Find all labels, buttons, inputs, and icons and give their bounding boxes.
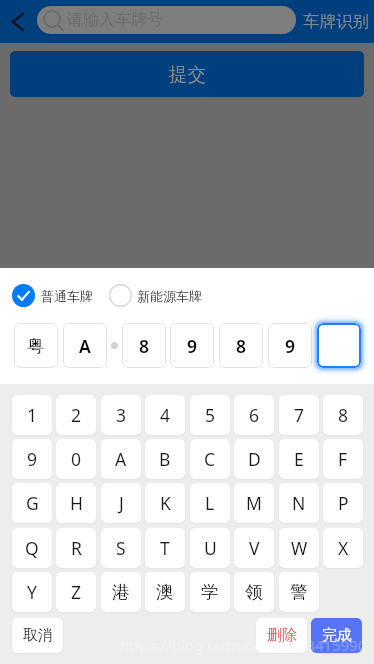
button[interactable]: 车牌识别 xyxy=(303,11,369,32)
button[interactable]: 8 xyxy=(323,395,363,435)
button[interactable]: 9 xyxy=(170,323,214,368)
button[interactable]: Y xyxy=(12,572,52,612)
button[interactable]: X xyxy=(323,528,363,568)
staticText: 提交 xyxy=(169,63,206,86)
button[interactable]: 警 xyxy=(279,572,319,612)
staticText: J xyxy=(119,491,124,515)
staticText: 澳 xyxy=(156,581,174,603)
staticText: M xyxy=(246,491,262,515)
staticText: 9 xyxy=(187,334,198,358)
staticText: R xyxy=(71,536,82,560)
button[interactable]: H xyxy=(56,483,96,523)
button[interactable]: W xyxy=(279,528,319,568)
staticText: 8 xyxy=(338,403,349,427)
button[interactable]: U xyxy=(190,528,230,568)
button[interactable]: A xyxy=(101,439,141,479)
button[interactable]: Back xyxy=(0,4,36,40)
button[interactable]: B xyxy=(145,439,185,479)
button[interactable]: 港 xyxy=(101,572,141,612)
button[interactable]: 领 xyxy=(234,572,274,612)
staticText: 6 xyxy=(249,403,260,427)
button[interactable]: 6 xyxy=(234,395,274,435)
staticText: L xyxy=(205,491,215,515)
button[interactable]: V xyxy=(234,528,274,568)
button[interactable]: 1 xyxy=(12,395,52,435)
staticText: G xyxy=(26,491,39,515)
button[interactable]: P xyxy=(323,483,363,523)
button[interactable]: Z xyxy=(56,572,96,612)
staticText: 删除 xyxy=(267,626,297,645)
staticText: A xyxy=(115,447,127,471)
button[interactable]: F xyxy=(323,439,363,479)
button[interactable]: 新能源车牌 xyxy=(109,284,202,307)
staticText: 粤 xyxy=(27,335,45,357)
staticText: 2 xyxy=(71,403,82,427)
staticText: F xyxy=(338,447,348,471)
staticText: W xyxy=(291,536,308,560)
button[interactable]: Q xyxy=(12,528,52,568)
button[interactable]: M xyxy=(234,483,274,523)
staticText: https://blog.csdn.net/qq_33415990 xyxy=(120,635,367,655)
staticText: 普通车牌 xyxy=(41,288,93,304)
button[interactable]: G xyxy=(12,483,52,523)
staticText: A xyxy=(79,334,91,358)
button[interactable]: A xyxy=(63,323,107,368)
staticText: C xyxy=(204,447,216,471)
button[interactable]: 0 xyxy=(56,439,96,479)
button[interactable]: 5 xyxy=(190,395,230,435)
staticText: P xyxy=(338,491,349,515)
button[interactable]: 澳 xyxy=(145,572,185,612)
button[interactable]: 7 xyxy=(279,395,319,435)
staticText: 5 xyxy=(205,403,216,427)
staticText: 8 xyxy=(236,334,247,358)
staticText: E xyxy=(294,447,304,471)
staticText: N xyxy=(292,491,306,515)
button[interactable]: C xyxy=(190,439,230,479)
staticText: 新能源车牌 xyxy=(137,288,202,304)
button[interactable]: 完成 xyxy=(311,618,362,653)
staticText: K xyxy=(160,491,171,515)
staticText: D xyxy=(248,447,261,471)
staticText: 3 xyxy=(116,403,127,427)
button[interactable]: 请输入车牌号 xyxy=(37,6,296,34)
button[interactable]: 9 xyxy=(268,323,312,368)
button[interactable]: 4 xyxy=(145,395,185,435)
button[interactable]: S xyxy=(101,528,141,568)
button[interactable] xyxy=(317,323,361,368)
button[interactable]: 3 xyxy=(101,395,141,435)
button[interactable]: 8 xyxy=(219,323,263,368)
staticText: 9 xyxy=(27,447,38,471)
button[interactable]: 删除 xyxy=(256,618,307,653)
button[interactable]: K xyxy=(145,483,185,523)
button[interactable]: D xyxy=(234,439,274,479)
button[interactable]: 取消 xyxy=(12,618,63,653)
button[interactable]: 8 xyxy=(122,323,166,368)
button[interactable]: N xyxy=(279,483,319,523)
staticText: Y xyxy=(27,580,37,604)
staticText: 港 xyxy=(112,581,130,603)
button[interactable]: 粤 xyxy=(14,323,58,368)
staticText: 8 xyxy=(139,334,150,358)
button[interactable]: E xyxy=(279,439,319,479)
button[interactable]: 9 xyxy=(12,439,52,479)
staticText: B xyxy=(159,447,171,471)
button[interactable]: 普通车牌 xyxy=(12,284,93,307)
staticText: Q xyxy=(25,536,39,560)
button[interactable]: 提交 xyxy=(10,51,364,97)
button[interactable]: 学 xyxy=(190,572,230,612)
staticText: 0 xyxy=(71,447,82,471)
staticText: T xyxy=(160,536,170,560)
staticText: H xyxy=(70,491,83,515)
staticText: Z xyxy=(71,580,82,604)
button[interactable]: R xyxy=(56,528,96,568)
staticText: 9 xyxy=(285,334,296,358)
button[interactable]: T xyxy=(145,528,185,568)
staticText: 警 xyxy=(290,581,308,603)
button[interactable]: J xyxy=(101,483,141,523)
staticText: S xyxy=(116,536,126,560)
staticText: 请输入车牌号 xyxy=(67,10,163,30)
staticText: 1 xyxy=(27,403,38,427)
button[interactable]: 2 xyxy=(56,395,96,435)
button[interactable]: L xyxy=(190,483,230,523)
staticText: 取消 xyxy=(23,626,53,645)
